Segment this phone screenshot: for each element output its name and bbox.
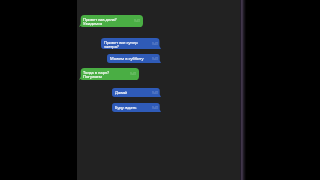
staticText: 9:41 [152,106,159,110]
staticText: Привет как дела? Увидимся [83,17,117,26]
staticText: 9:41 [152,57,159,61]
button[interactable]: Тогда в парк? Погуляем [79,68,139,80]
staticText: 9:41 [130,72,137,76]
staticText: 9:41 [152,42,159,46]
staticText: Привет все супер завтра? [104,40,138,49]
staticText: 9:41 [134,19,141,23]
button[interactable]: Привет все супер завтра? [101,38,161,49]
staticText: Тогда в парк? Погуляем [83,70,109,79]
button[interactable]: Буду ждать [112,103,161,112]
button[interactable]: Давай [112,88,161,97]
button[interactable]: Привет как дела? Увидимся [79,15,143,27]
staticText: Давай [115,90,128,95]
staticText: Буду ждать [115,105,137,110]
button[interactable]: Можем в субботу [107,54,161,63]
staticText: Можем в субботу [110,56,144,61]
staticText: 9:41 [152,91,159,95]
